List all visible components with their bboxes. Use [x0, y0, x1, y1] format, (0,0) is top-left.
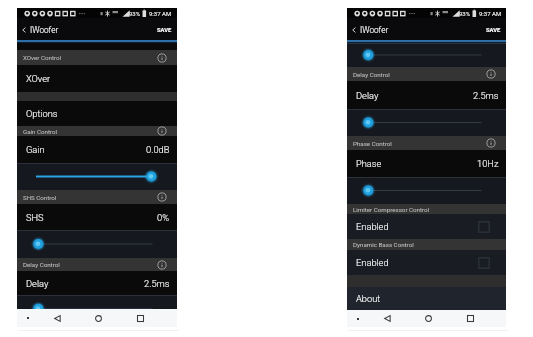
button[interactable]: Enabled — [347, 250, 506, 275]
button[interactable]: Info about XOver Control — [157, 53, 167, 63]
staticText: Options — [26, 108, 58, 119]
button[interactable] — [347, 177, 506, 204]
button[interactable]: XOver — [17, 65, 177, 92]
button[interactable]: Enabled checkbox — [478, 221, 490, 233]
button[interactable]: Info about SHS Control — [157, 192, 167, 202]
staticText: 2.5ms — [144, 278, 170, 289]
staticText: 2.5ms — [473, 90, 499, 101]
button[interactable]: Info about Phase Control — [486, 138, 496, 148]
button[interactable]: Home — [86, 309, 110, 327]
staticText: Gain — [26, 144, 45, 155]
button[interactable]: SHS Control — [17, 190, 177, 204]
button[interactable]: Dynamic Bass Control — [347, 239, 506, 250]
button[interactable]: Limiter Compressor Control — [347, 204, 506, 214]
button[interactable]: Phase Control — [347, 136, 506, 150]
staticText: Dynamic Bass Control — [353, 241, 414, 248]
button[interactable] — [17, 230, 177, 258]
button[interactable]: SAVE — [153, 22, 175, 37]
staticText: SAVE — [486, 27, 501, 34]
staticText: Delay — [26, 278, 49, 289]
staticText: 0% — [157, 212, 170, 223]
staticText: SHS — [26, 212, 44, 223]
button[interactable]: Recent apps — [128, 309, 152, 327]
button[interactable]: Recent apps — [458, 310, 482, 327]
button[interactable]: Home — [416, 310, 440, 327]
staticText: IWoofer — [360, 25, 389, 35]
staticText: 9:37 AM — [479, 10, 502, 17]
button[interactable]: Info about Delay Control — [486, 69, 496, 79]
button[interactable] — [17, 163, 177, 190]
button[interactable]: Options — [17, 101, 177, 126]
button[interactable]: SHS — [17, 204, 177, 230]
button[interactable]: SAVE — [482, 22, 504, 37]
staticText: About — [356, 293, 381, 304]
staticText: 10Hz — [477, 158, 499, 169]
button[interactable]: XOver Control — [17, 50, 177, 65]
staticText: Delay Control — [353, 71, 390, 78]
button[interactable]: About — [347, 287, 506, 310]
staticText: 93% — [129, 10, 141, 17]
staticText: Enabled — [356, 221, 389, 232]
button[interactable]: IWoofer — [18, 22, 61, 36]
button[interactable]: Enabled — [347, 214, 506, 239]
staticText: SAVE — [157, 27, 172, 34]
button[interactable] — [347, 109, 506, 136]
button[interactable]: Info about Gain Control — [157, 126, 167, 136]
button[interactable]: Delay Control — [17, 258, 177, 271]
button[interactable]: Gain — [17, 136, 177, 163]
button[interactable]: Enabled checkbox — [478, 257, 490, 269]
button[interactable] — [17, 295, 177, 309]
button[interactable]: Delay — [347, 81, 506, 109]
staticText: SHS Control — [23, 194, 57, 201]
button[interactable]: IWoofer — [348, 22, 391, 36]
staticText: Limiter Compressor Control — [353, 206, 430, 213]
staticText: IWoofer — [30, 25, 59, 35]
button[interactable]: Gain Control — [17, 126, 177, 136]
button[interactable]: Info about Delay Control — [157, 260, 167, 270]
staticText: Phase — [356, 158, 382, 169]
button[interactable]: Menu — [22, 309, 34, 327]
staticText: 0.0dB — [146, 144, 170, 155]
button[interactable]: Back — [45, 309, 69, 327]
button[interactable]: Phase — [347, 150, 506, 177]
button[interactable] — [347, 43, 506, 67]
staticText: Delay Control — [23, 261, 60, 268]
button[interactable]: Menu — [352, 310, 364, 327]
staticText: Delay — [356, 90, 379, 101]
staticText: Gain Control — [23, 128, 58, 135]
staticText: 93% — [459, 10, 471, 17]
button[interactable]: Back — [375, 310, 399, 327]
staticText: 9:37 AM — [149, 10, 172, 17]
staticText: Enabled — [356, 257, 389, 268]
button[interactable]: Delay — [17, 271, 177, 295]
staticText: Phase Control — [353, 140, 392, 147]
staticText: XOver Control — [23, 54, 61, 61]
button[interactable]: Delay Control — [347, 67, 506, 81]
staticText: XOver — [26, 73, 51, 84]
